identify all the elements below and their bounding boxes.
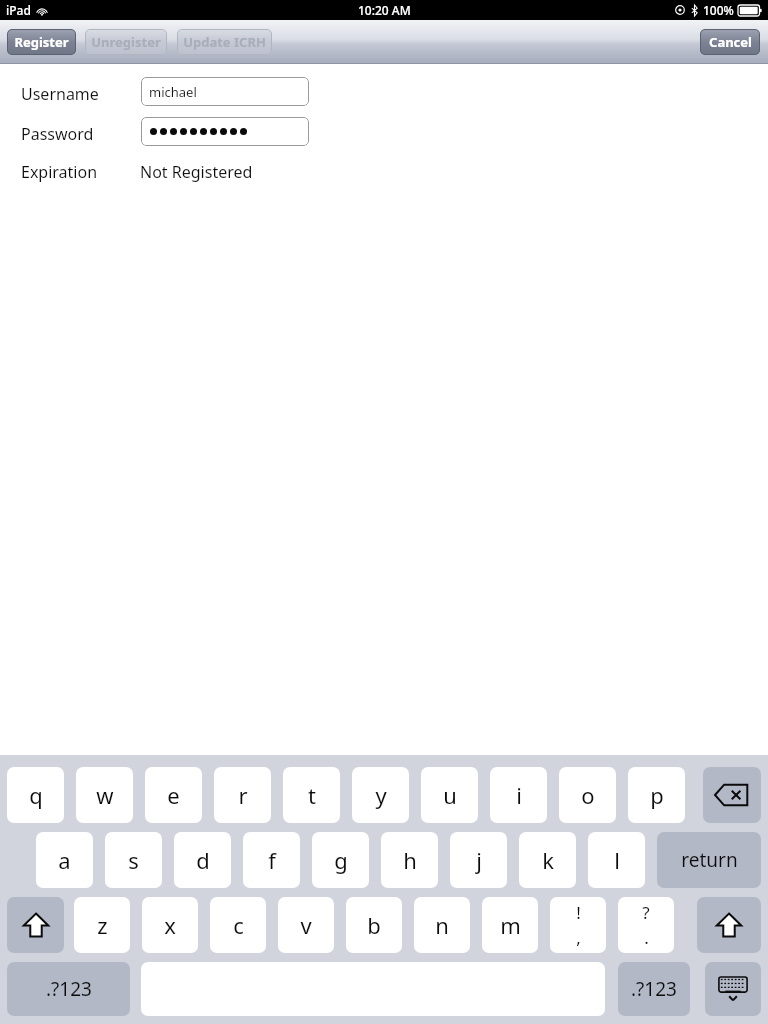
- button[interactable]: w: [76, 767, 133, 823]
- staticText: s: [128, 845, 139, 875]
- button[interactable]: Backspace: [703, 767, 761, 823]
- staticText: ,: [576, 926, 581, 949]
- button[interactable]: k: [519, 832, 576, 888]
- staticText: u: [443, 780, 457, 810]
- button[interactable]: h: [381, 832, 438, 888]
- button[interactable]: b: [346, 897, 402, 953]
- staticText: l: [614, 845, 620, 875]
- staticText: q: [29, 780, 43, 810]
- staticText: h: [403, 845, 417, 875]
- button[interactable]: i: [490, 767, 547, 823]
- staticText: Register: [14, 33, 69, 51]
- staticText: v: [300, 910, 312, 940]
- staticText: i: [516, 780, 522, 810]
- button[interactable]: c: [210, 897, 266, 953]
- staticText: f: [268, 845, 276, 875]
- staticText: r: [238, 780, 248, 810]
- button[interactable]: s: [105, 832, 162, 888]
- button[interactable]: o: [559, 767, 616, 823]
- button[interactable]: Register: [7, 29, 76, 55]
- button[interactable]: ?: [618, 897, 674, 953]
- button[interactable]: y: [352, 767, 409, 823]
- button[interactable]: [141, 117, 309, 146]
- button[interactable]: f: [243, 832, 300, 888]
- staticText: x: [164, 910, 176, 940]
- button[interactable]: x: [142, 897, 198, 953]
- button[interactable]: Update ICRH: [177, 29, 272, 55]
- staticText: Update ICRH: [183, 33, 266, 51]
- staticText: 100%: [703, 2, 734, 18]
- staticText: m: [500, 910, 521, 940]
- staticText: o: [581, 780, 595, 810]
- button[interactable]: e: [145, 767, 202, 823]
- button[interactable]: m: [482, 897, 538, 953]
- staticText: n: [435, 910, 449, 940]
- staticText: p: [650, 780, 664, 810]
- staticText: z: [97, 910, 108, 940]
- staticText: .: [644, 926, 649, 949]
- button[interactable]: return: [657, 832, 761, 888]
- button[interactable]: n: [414, 897, 470, 953]
- button[interactable]: g: [312, 832, 369, 888]
- button[interactable]: r: [214, 767, 271, 823]
- button[interactable]: a: [36, 832, 93, 888]
- staticText: Not Registered: [140, 161, 253, 183]
- staticText: b: [367, 910, 381, 940]
- button[interactable]: p: [628, 767, 685, 823]
- button[interactable]: d: [174, 832, 231, 888]
- staticText: Expiration: [21, 161, 98, 183]
- staticText: j: [476, 845, 482, 875]
- staticText: .?123: [46, 976, 92, 1002]
- staticText: iPad: [6, 2, 31, 18]
- button[interactable]: .?123: [618, 962, 690, 1016]
- button[interactable]: u: [421, 767, 478, 823]
- staticText: c: [233, 910, 244, 940]
- button[interactable]: q: [7, 767, 64, 823]
- staticText: a: [58, 845, 71, 875]
- staticText: t: [308, 780, 316, 810]
- button[interactable]: michael: [141, 77, 309, 106]
- button[interactable]: .?123: [7, 962, 130, 1016]
- button[interactable]: Shift: [7, 897, 64, 953]
- button[interactable]: Cancel: [700, 29, 760, 55]
- button[interactable]: v: [278, 897, 334, 953]
- button[interactable]: !: [550, 897, 606, 953]
- staticText: .?123: [631, 976, 677, 1002]
- staticText: ?: [642, 901, 650, 924]
- button[interactable]: Shift: [697, 897, 761, 953]
- button[interactable]: l: [588, 832, 645, 888]
- button[interactable]: Unregister: [85, 29, 167, 55]
- button[interactable]: t: [283, 767, 340, 823]
- staticText: Unregister: [91, 33, 161, 51]
- staticText: k: [542, 845, 554, 875]
- staticText: y: [375, 780, 387, 810]
- staticText: Cancel: [709, 33, 752, 51]
- staticText: w: [96, 780, 114, 810]
- staticText: !: [576, 901, 581, 924]
- staticText: 10:20 AM: [358, 2, 411, 18]
- staticText: return: [681, 847, 738, 873]
- staticText: e: [167, 780, 180, 810]
- staticText: Password: [21, 123, 94, 145]
- staticText: michael: [149, 83, 197, 101]
- button[interactable]: j: [450, 832, 507, 888]
- staticText: Username: [21, 83, 99, 105]
- staticText: d: [196, 845, 210, 875]
- staticText: g: [334, 845, 348, 875]
- button[interactable]: Hide keyboard: [705, 962, 761, 1016]
- button[interactable]: z: [74, 897, 130, 953]
